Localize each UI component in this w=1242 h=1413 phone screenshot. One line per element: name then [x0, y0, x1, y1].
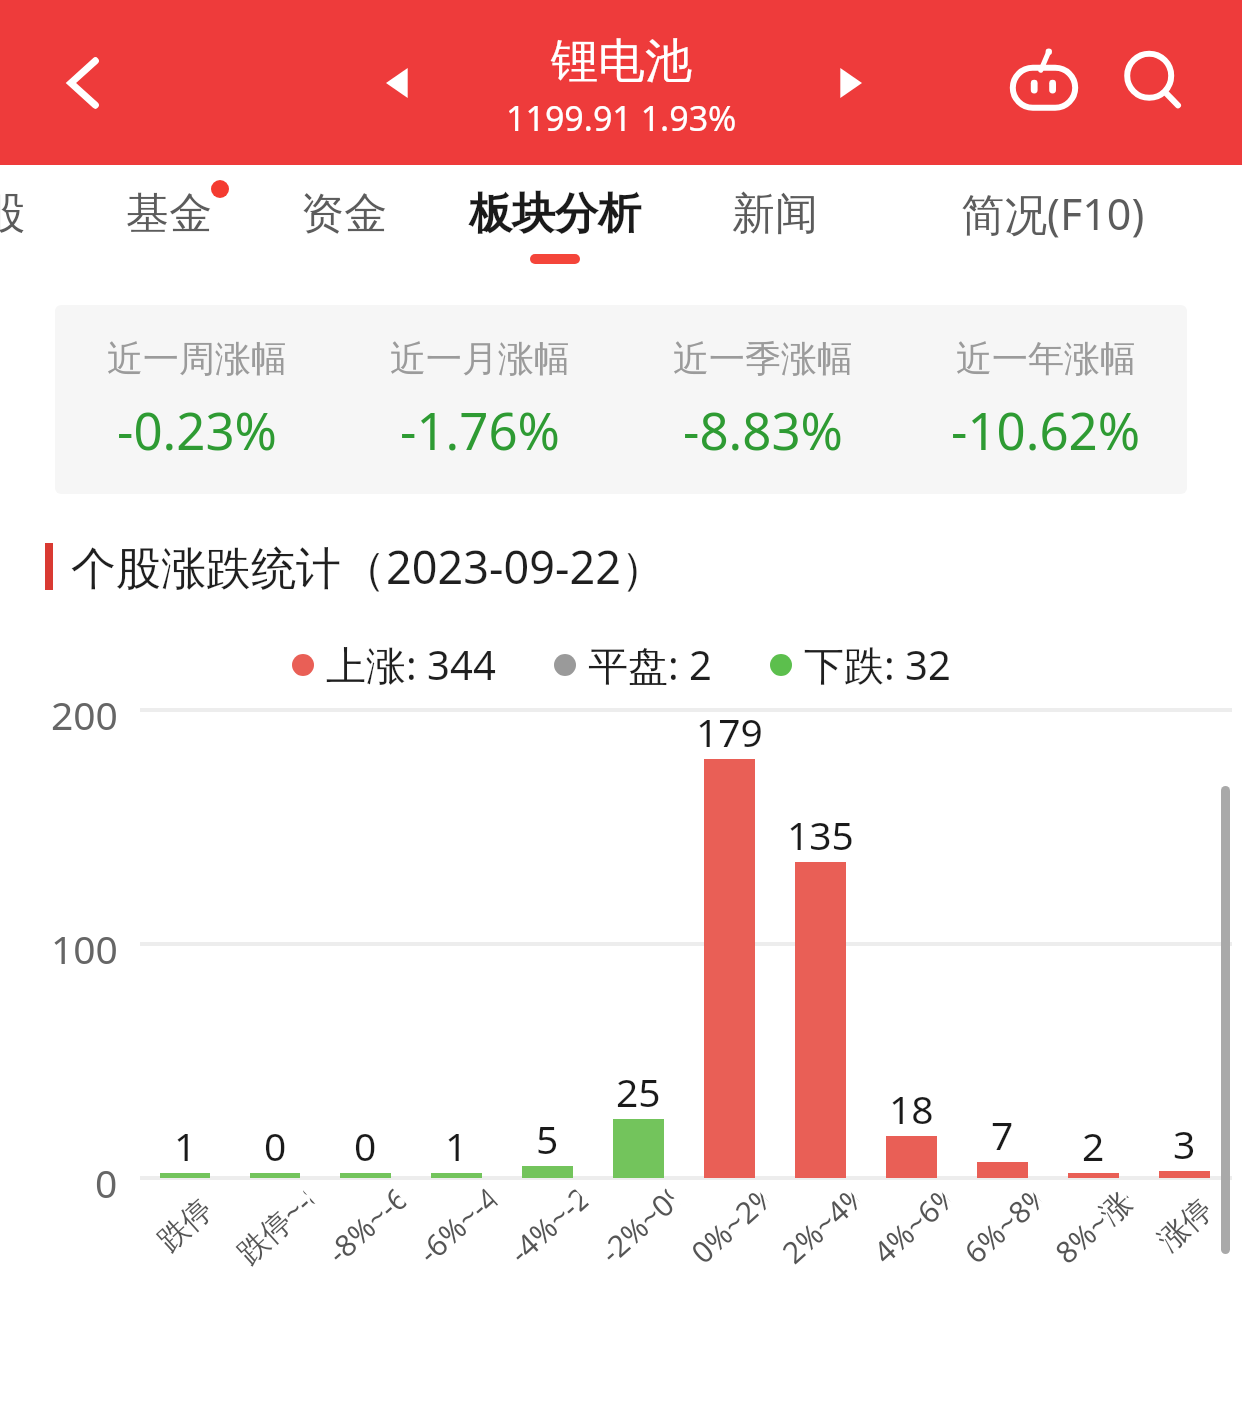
staticText: 上涨: 344 [326, 637, 496, 692]
staticText: 个股涨跌统计（2023-09-22） [71, 536, 666, 597]
staticText: 下跌: 32 [804, 637, 951, 692]
staticText: 板块分析 [469, 187, 641, 241]
button[interactable]: 板块分析 [424, 165, 686, 285]
staticText: -1.76% [400, 395, 560, 464]
staticText: -8.83% [683, 395, 843, 464]
staticText: -6%~-4% [409, 1181, 504, 1272]
staticText: 135 [787, 808, 854, 861]
button[interactable]: 基金 [74, 165, 264, 285]
staticText: -2%~0% [591, 1181, 686, 1272]
staticText: 25 [616, 1065, 661, 1118]
staticText: 0 [95, 1156, 118, 1200]
staticText: 近一月涨幅 [390, 336, 570, 381]
staticText: 锂电池 [551, 32, 692, 91]
staticText: 涨停 [1150, 1191, 1220, 1259]
button[interactable]: 资金 [264, 165, 424, 285]
staticText: -0.23% [117, 395, 277, 464]
button[interactable]: 股 [0, 165, 74, 285]
button[interactable]: Search [1114, 43, 1194, 123]
staticText: 近一周涨幅 [107, 336, 287, 381]
button[interactable]: 新闻 [686, 165, 864, 285]
staticText: 跌停 [150, 1191, 220, 1259]
staticText: 8%~涨停 [1046, 1181, 1141, 1272]
button[interactable]: Back [48, 46, 122, 120]
staticText: 0 [264, 1119, 287, 1172]
staticText: 资金 [301, 187, 387, 241]
button[interactable]: 简况(F10) [864, 165, 1242, 285]
staticText: 5 [536, 1112, 559, 1165]
staticText: 4%~6% [864, 1181, 959, 1272]
staticText: 0%~2% [682, 1181, 777, 1272]
staticText: 179 [696, 705, 763, 758]
staticText: 200 [51, 688, 118, 732]
staticText: 1 [445, 1119, 468, 1172]
staticText: 平盘: 2 [588, 637, 712, 692]
staticText: 近一季涨幅 [673, 336, 853, 381]
staticText: 7 [991, 1108, 1014, 1161]
staticText: 近一年涨幅 [956, 336, 1136, 381]
staticText: 简况(F10) [961, 184, 1145, 243]
staticText: 6%~8% [955, 1181, 1050, 1272]
staticText: 2 [1082, 1119, 1105, 1172]
staticText: 1 [174, 1119, 197, 1172]
staticText: 18 [889, 1082, 934, 1135]
staticText: 0 [354, 1119, 377, 1172]
staticText: 跌停~-8% [228, 1181, 322, 1272]
button[interactable]: 近一周涨幅 [55, 305, 1187, 494]
staticText: 基金 [126, 187, 212, 241]
staticText: -4%~-2% [500, 1181, 595, 1272]
staticText: 3 [1173, 1117, 1196, 1170]
staticText: 股 [0, 187, 25, 241]
button[interactable]: Next sector [818, 52, 880, 114]
button[interactable]: AI assistant [1004, 43, 1084, 123]
staticText: 1199.91 1.93% [506, 95, 737, 141]
staticText: 新闻 [732, 187, 818, 241]
staticText: 100 [51, 922, 118, 966]
staticText: -8%~-6% [318, 1181, 413, 1272]
button[interactable]: Previous sector [368, 52, 430, 114]
staticText: 2%~4% [773, 1181, 868, 1272]
staticText: -10.62% [951, 395, 1141, 464]
